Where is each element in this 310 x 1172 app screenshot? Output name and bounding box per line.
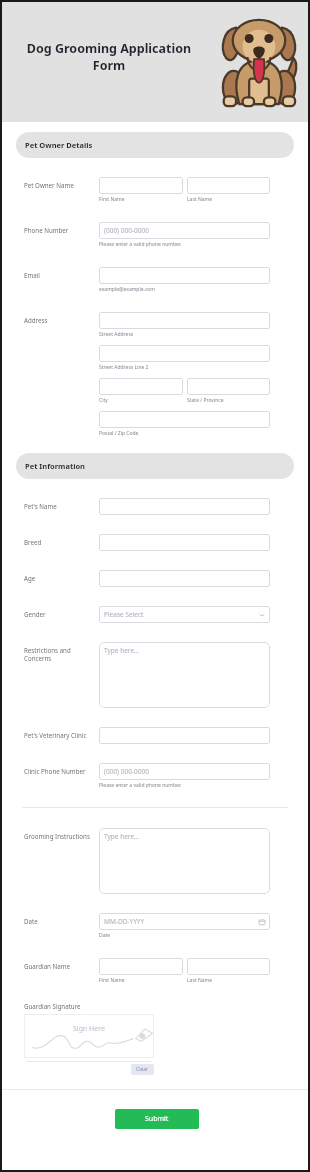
staticText: Pet Information [25, 461, 85, 471]
button[interactable]: Pet Information [16, 453, 294, 479]
staticText: Type here... [104, 646, 140, 655]
staticText: Postal / Zip Code [99, 430, 139, 437]
staticText: Restrictions and Concerns [24, 646, 99, 662]
staticText: Last Name [187, 977, 213, 984]
staticText: City [99, 397, 108, 404]
button[interactable] [187, 958, 270, 975]
staticText: Please enter a valid phone number. [99, 782, 182, 789]
staticText: Clear [136, 1066, 149, 1073]
button[interactable]: Pet Owner Details [16, 132, 294, 158]
button[interactable] [99, 534, 270, 551]
staticText: Age [24, 574, 36, 582]
staticText: Guardian Name [24, 962, 70, 970]
staticText: Clinic Phone Number [24, 767, 86, 775]
button[interactable] [99, 378, 183, 395]
staticText: Submit [145, 1114, 169, 1124]
button[interactable]: Type here... [99, 828, 270, 894]
button[interactable] [99, 570, 270, 587]
button[interactable] [187, 177, 270, 194]
staticText: Guardian Signature [24, 1002, 81, 1010]
other: Dog illustration [218, 14, 300, 112]
staticText: Street Address [99, 331, 134, 338]
button[interactable]: Please Select [99, 606, 270, 623]
staticText: First Name [99, 196, 125, 203]
staticText: Pet's Veterinary Clinic [24, 731, 87, 739]
button[interactable]: Clear [136, 1066, 149, 1073]
staticText: Address [24, 316, 48, 324]
staticText: Pet Owner Details [25, 140, 93, 150]
staticText: (000) 000-0000 [104, 767, 149, 776]
button[interactable] [99, 727, 270, 744]
button[interactable]: Type here... [99, 642, 270, 708]
button[interactable] [99, 345, 270, 362]
staticText: example@example.com [99, 286, 155, 293]
staticText: Type here... [104, 832, 140, 841]
button[interactable] [99, 312, 270, 329]
button[interactable] [99, 498, 270, 515]
button[interactable] [99, 958, 183, 975]
button[interactable]: (000) 000-0000 [99, 222, 270, 239]
staticText: Breed [24, 538, 42, 546]
staticText: Gender [24, 610, 46, 618]
button[interactable] [99, 267, 270, 284]
staticText: Email [24, 271, 40, 279]
staticText: (000) 000-0000 [104, 226, 149, 235]
button[interactable]: Submit [115, 1109, 199, 1129]
button[interactable]: (000) 000-0000 [99, 763, 270, 780]
staticText: Dog Grooming Application Form [20, 40, 198, 74]
staticText: Please Select [104, 610, 144, 619]
button[interactable]: MM-DD-YYYY [99, 913, 270, 930]
button[interactable] [187, 378, 270, 395]
button[interactable] [99, 411, 270, 428]
button[interactable]: Sign Here [24, 1014, 154, 1058]
button[interactable] [99, 177, 183, 194]
staticText: Date [99, 932, 111, 939]
staticText: Phone Number [24, 226, 69, 234]
staticText: First Name [99, 977, 125, 984]
staticText: State / Province [187, 397, 224, 404]
staticText: Date [24, 917, 38, 925]
staticText: Sign Here [73, 1024, 105, 1034]
staticText: MM-DD-YYYY [104, 917, 145, 926]
staticText: Last Name [187, 196, 213, 203]
staticText: Pet Owner Name [24, 181, 74, 189]
staticText: Please enter a valid phone number. [99, 241, 182, 248]
staticText: Pet's Name [24, 502, 57, 510]
staticText: Grooming Instructions [24, 832, 90, 840]
staticText: Street Address Line 2 [99, 364, 149, 371]
